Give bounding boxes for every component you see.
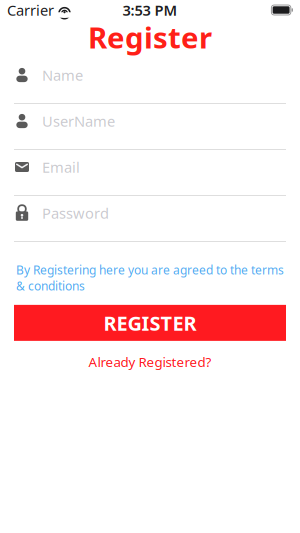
staticText: Register: [88, 17, 212, 56]
staticText: UserName: [42, 111, 115, 131]
staticText: REGISTER: [103, 310, 196, 336]
staticText: Email: [42, 157, 80, 177]
staticText: Name: [42, 65, 83, 85]
staticText: Carrier: [7, 0, 54, 20]
staticText: Already Registered?: [88, 353, 211, 371]
staticText: Password: [42, 203, 109, 223]
staticText: By Registering here you are agreed to th…: [16, 262, 284, 294]
button[interactable]: REGISTER: [14, 305, 286, 341]
staticText: 3:53 PM: [122, 0, 177, 20]
button[interactable]: Already Registered?: [14, 347, 286, 377]
button[interactable]: By Registering here you are agreed to th…: [14, 255, 286, 301]
